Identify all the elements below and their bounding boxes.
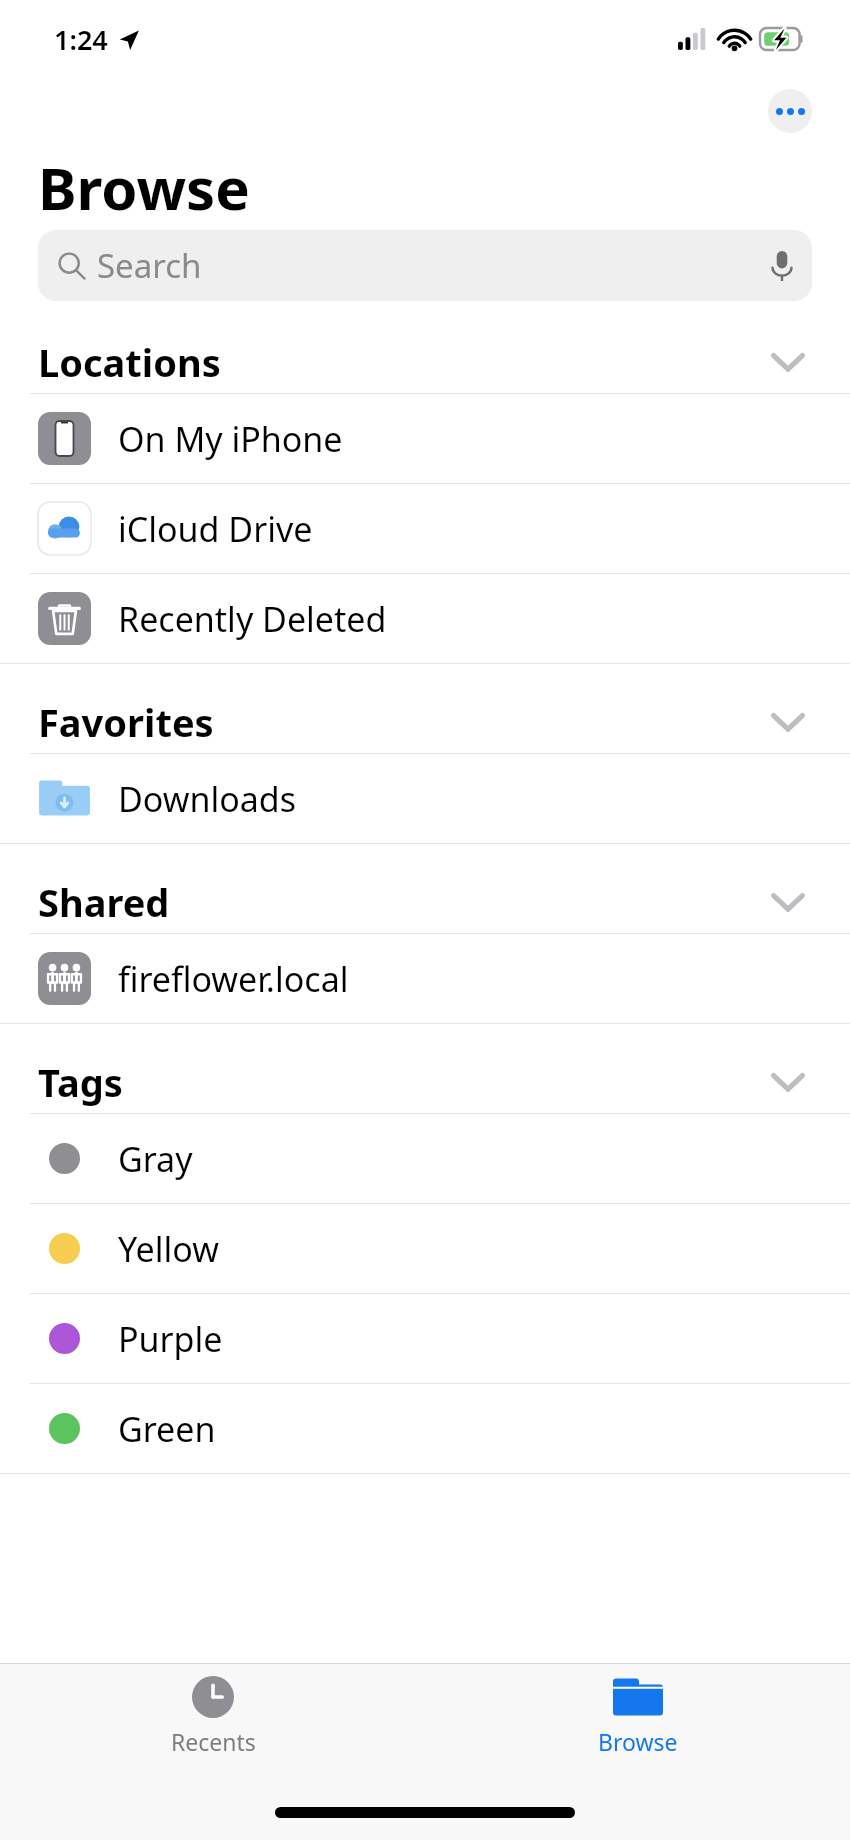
staticText: Shared <box>38 876 170 928</box>
staticText: Favorites <box>38 696 214 748</box>
other: Voice search <box>771 251 793 281</box>
button[interactable]: Gray <box>0 1114 850 1203</box>
button[interactable]: Downloads <box>0 754 850 843</box>
staticText: Browse <box>598 1726 678 1757</box>
button[interactable]: More options <box>768 89 812 133</box>
staticText: Search <box>97 243 202 288</box>
staticText: Locations <box>38 336 221 388</box>
button[interactable]: Recents <box>113 1664 313 1757</box>
button[interactable]: Recently Deleted <box>0 574 850 663</box>
staticText: fireflower.local <box>118 956 349 1002</box>
button[interactable]: Favorites <box>0 691 850 753</box>
staticText: Browse <box>38 148 250 227</box>
button[interactable]: Tags <box>0 1051 850 1113</box>
staticText: Purple <box>118 1316 223 1362</box>
button[interactable]: Shared <box>0 871 850 933</box>
staticText: Downloads <box>118 776 297 822</box>
button[interactable]: Browse <box>538 1664 738 1757</box>
staticText: On My iPhone <box>118 416 343 462</box>
button[interactable]: Green <box>0 1384 850 1473</box>
button[interactable]: Search <box>38 230 812 301</box>
button[interactable]: Purple <box>0 1294 850 1383</box>
button[interactable]: fireflower.local <box>0 934 850 1023</box>
staticText: Recently Deleted <box>118 596 387 642</box>
staticText: 1:24 <box>54 21 108 58</box>
staticText: Yellow <box>118 1226 219 1272</box>
button[interactable]: Yellow <box>0 1204 850 1293</box>
staticText: Recents <box>171 1726 256 1757</box>
staticText: Tags <box>38 1056 123 1108</box>
staticText: Gray <box>118 1136 193 1182</box>
button[interactable]: On My iPhone <box>0 394 850 483</box>
button[interactable]: Locations <box>0 331 850 393</box>
staticText: Green <box>118 1406 216 1452</box>
button[interactable]: iCloud Drive <box>0 484 850 573</box>
staticText: iCloud Drive <box>118 506 313 552</box>
